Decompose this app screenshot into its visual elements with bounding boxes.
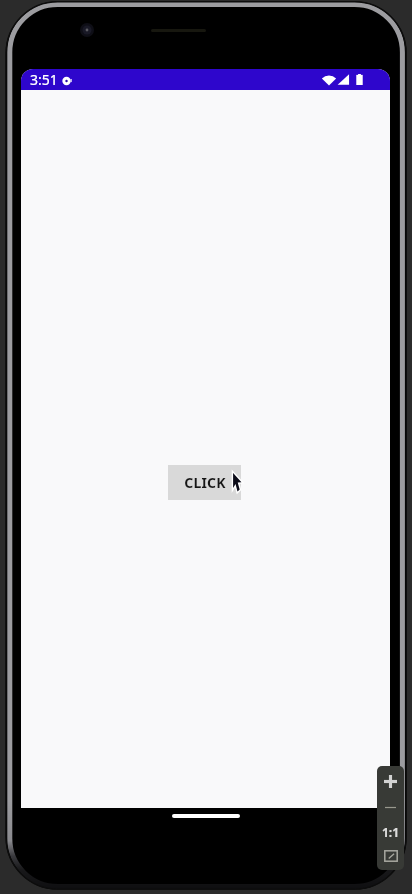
button[interactable]: Zoom out <box>377 796 404 818</box>
button[interactable]: Actual size <box>377 821 404 843</box>
button[interactable]: Zoom in <box>377 770 404 792</box>
button[interactable]: Zoom to fit <box>377 845 404 867</box>
button[interactable]: CLICK <box>168 465 241 500</box>
staticText: CLICK <box>184 473 226 492</box>
staticText: 1:1 <box>382 824 400 840</box>
staticText: 3:51 <box>30 70 58 89</box>
